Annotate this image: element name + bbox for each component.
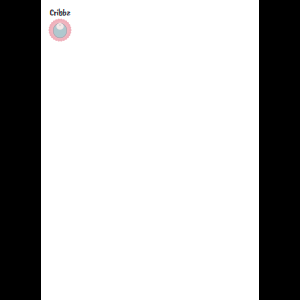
staticText: Cribbz — [49, 6, 70, 19]
